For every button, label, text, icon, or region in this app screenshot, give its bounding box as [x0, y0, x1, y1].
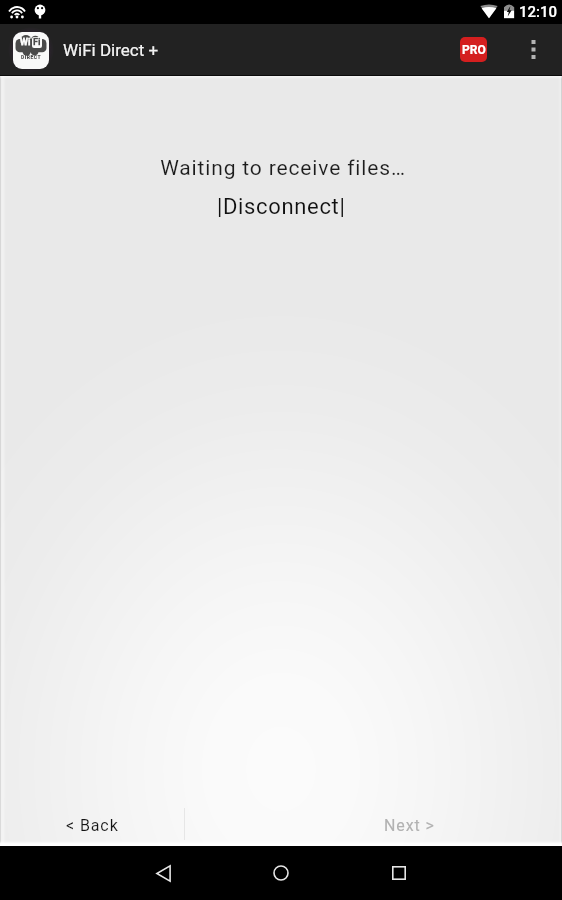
button[interactable]: Home	[222, 846, 340, 900]
staticText: WiFi Direct +	[63, 40, 159, 60]
staticText: Waiting to receive files…	[2, 156, 562, 181]
button[interactable]: |Disconnect|	[207, 191, 356, 223]
button[interactable]: Upgrade to PRO	[460, 37, 487, 62]
staticText: Wi	[20, 37, 31, 48]
staticText: Next >	[384, 816, 435, 835]
button[interactable]: More options	[516, 24, 550, 75]
button[interactable]: Recent apps	[340, 846, 458, 900]
staticText: 12:10	[519, 3, 558, 21]
staticText: |Disconnect|	[217, 194, 346, 220]
staticText: Fi	[33, 37, 41, 48]
staticText: PRO	[462, 43, 486, 57]
button[interactable]: Back	[104, 846, 222, 900]
staticText: < Back	[66, 816, 119, 835]
staticText: DIRECT	[21, 54, 42, 60]
button[interactable]: < Back	[0, 805, 185, 845]
button[interactable]: Next >	[185, 805, 562, 845]
